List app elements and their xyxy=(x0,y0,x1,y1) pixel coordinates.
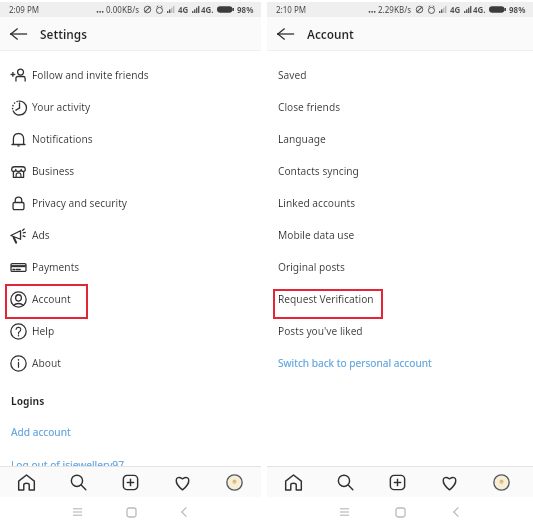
staticText: Account xyxy=(32,292,71,306)
staticText: Logins xyxy=(11,394,45,408)
button[interactable]: Back xyxy=(445,501,467,523)
staticText: 2.29KB/s xyxy=(378,4,412,15)
staticText: Help xyxy=(32,324,55,338)
button[interactable]: Create xyxy=(382,467,412,497)
staticText: Log out of isiewellery97 xyxy=(11,458,125,472)
button[interactable]: Home xyxy=(278,467,308,497)
staticText: Language xyxy=(278,132,326,146)
button[interactable]: Request Verification xyxy=(267,283,533,315)
button[interactable]: Original posts xyxy=(267,251,533,283)
button[interactable]: Menu xyxy=(333,501,355,523)
button[interactable]: Ads xyxy=(0,219,261,251)
button[interactable]: Follow and invite friends xyxy=(0,59,261,91)
staticText: Follow and invite friends xyxy=(32,68,149,82)
staticText: 0.00KB/s xyxy=(106,4,140,15)
button[interactable]: Linked accounts xyxy=(267,187,533,219)
staticText: About xyxy=(32,356,61,370)
staticText: Posts you've liked xyxy=(278,324,363,338)
button[interactable]: Activity xyxy=(434,467,464,497)
button[interactable]: Contacts syncing xyxy=(267,155,533,187)
staticText: Contacts syncing xyxy=(278,164,359,178)
staticText: Linked accounts xyxy=(278,196,356,210)
button[interactable]: Profile xyxy=(219,467,249,497)
staticText: Privacy and security xyxy=(32,196,128,210)
button[interactable]: Search xyxy=(330,467,360,497)
staticText: Switch back to personal account xyxy=(278,356,432,370)
button[interactable]: Switch back to personal account xyxy=(267,347,533,379)
button[interactable]: Profile xyxy=(486,467,516,497)
button[interactable]: Search xyxy=(63,467,93,497)
button[interactable]: About xyxy=(0,347,261,379)
staticText: Request Verification xyxy=(278,292,374,306)
button[interactable]: Language xyxy=(267,123,533,155)
button[interactable]: Mobile data use xyxy=(267,219,533,251)
button[interactable]: Menu xyxy=(66,501,88,523)
staticText: 98% xyxy=(237,4,254,15)
button[interactable]: Close friends xyxy=(267,91,533,123)
button[interactable]: Help xyxy=(0,315,261,347)
staticText: Close friends xyxy=(278,100,341,114)
button[interactable]: Back xyxy=(273,22,297,46)
button[interactable]: Activity xyxy=(167,467,197,497)
button[interactable]: Account xyxy=(0,283,261,315)
staticText: 98% xyxy=(509,4,526,15)
staticText: 4G xyxy=(178,4,189,15)
staticText: Notifications xyxy=(32,132,93,146)
staticText: Your activity xyxy=(32,100,91,114)
staticText: Mobile data use xyxy=(278,228,355,242)
staticText: Settings xyxy=(40,26,88,42)
button[interactable]: Your activity xyxy=(0,91,261,123)
button[interactable]: Back xyxy=(6,22,30,46)
staticText: Saved xyxy=(278,68,307,82)
button[interactable]: Home xyxy=(11,467,41,497)
button[interactable]: Saved xyxy=(267,59,533,91)
button[interactable]: Create xyxy=(115,467,145,497)
button[interactable]: Payments xyxy=(0,251,261,283)
staticText: Payments xyxy=(32,260,80,274)
staticText: Original posts xyxy=(278,260,345,274)
staticText: Account xyxy=(307,26,354,42)
staticText: 4G. xyxy=(201,4,214,15)
button[interactable]: Posts you've liked xyxy=(267,315,533,347)
staticText: Add account xyxy=(11,425,71,439)
button[interactable]: Back xyxy=(173,501,195,523)
staticText: Business xyxy=(32,164,75,178)
button[interactable]: Recents xyxy=(120,501,142,523)
staticText: 2:10 PM xyxy=(276,4,307,15)
button[interactable]: Recents xyxy=(389,501,411,523)
button[interactable]: Privacy and security xyxy=(0,187,261,219)
button[interactable]: Notifications xyxy=(0,123,261,155)
staticText: Ads xyxy=(32,228,50,242)
staticText: 4G xyxy=(450,4,461,15)
button[interactable]: Business xyxy=(0,155,261,187)
button[interactable]: Add account xyxy=(0,422,261,449)
button[interactable]: Log out of isiewellery97 xyxy=(0,449,261,481)
staticText: 2:09 PM xyxy=(9,4,40,15)
staticText: 4G. xyxy=(473,4,486,15)
